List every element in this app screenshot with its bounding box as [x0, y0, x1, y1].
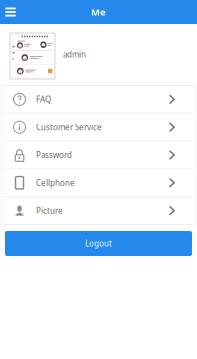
- button[interactable]: admin: [0, 24, 197, 85]
- staticText: Customer Service: [36, 122, 102, 132]
- staticText: Me: [91, 6, 106, 18]
- button[interactable]: Cellphone: [4, 169, 193, 196]
- button[interactable]: Customer Service: [4, 114, 193, 141]
- staticText: admin: [63, 49, 86, 60]
- staticText: Logout: [85, 238, 112, 249]
- staticText: Picture: [36, 205, 63, 216]
- button[interactable]: FAQ: [4, 86, 193, 113]
- button[interactable]: Password: [4, 142, 193, 168]
- staticText: Cellphone: [36, 177, 75, 188]
- button[interactable]: Picture: [4, 197, 193, 224]
- button[interactable]: Menu: [0, 0, 20, 24]
- staticText: Password: [36, 150, 72, 160]
- staticText: FAQ: [36, 94, 51, 105]
- button[interactable]: Logout: [5, 231, 192, 256]
